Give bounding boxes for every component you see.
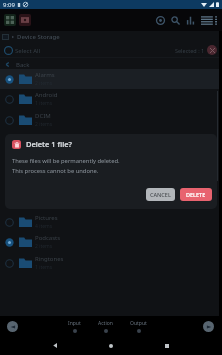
- staticText: Movies: [35, 153, 55, 161]
- staticText: CANCEL: [150, 191, 171, 198]
- button[interactable]: Next: [203, 321, 214, 332]
- staticText: 1 items: [35, 264, 53, 271]
- button[interactable]: Clear selection: [207, 45, 217, 55]
- staticText: 1 items: [35, 100, 53, 107]
- button[interactable]: Download: [0, 130, 219, 150]
- staticText: Pictures: [35, 214, 58, 222]
- button[interactable]: Device Storage: [0, 31, 222, 43]
- button[interactable]: Podcasts: [0, 232, 219, 252]
- staticText: Select All: [15, 47, 41, 55]
- staticText: Android: [35, 91, 58, 99]
- staticText: This process cannot be undone.: [12, 167, 99, 175]
- staticText: Ringtones: [35, 255, 64, 263]
- button[interactable]: Back: [27, 336, 83, 355]
- button[interactable]: CANCEL: [146, 188, 175, 201]
- staticText: DELETE: [186, 191, 206, 198]
- button[interactable]: Output: [128, 319, 149, 334]
- staticText: Back: [16, 61, 30, 69]
- button[interactable]: Search: [168, 11, 183, 29]
- staticText: DCIM: [35, 112, 51, 120]
- button[interactable]: Android: [0, 89, 219, 109]
- button[interactable]: Notifications: [0, 191, 219, 211]
- staticText: 9:09: [3, 1, 15, 9]
- staticText: Output: [130, 320, 147, 327]
- button[interactable]: Apps: [4, 14, 16, 26]
- button[interactable]: Music: [0, 171, 219, 191]
- button[interactable]: Ringtones: [0, 253, 219, 273]
- staticText: 2 items: [35, 243, 53, 250]
- button[interactable]: Back: [0, 58, 222, 71]
- staticText: Alarms: [35, 71, 55, 79]
- button[interactable]: Recents: [139, 336, 195, 355]
- button[interactable]: DCIM: [0, 110, 219, 130]
- button[interactable]: Home: [83, 336, 139, 355]
- staticText: 4 items: [35, 223, 53, 230]
- button[interactable]: DELETE: [180, 188, 212, 201]
- button[interactable]: Select All: [0, 43, 222, 57]
- button[interactable]: Action: [96, 319, 115, 334]
- staticText: Download: [35, 132, 64, 140]
- staticText: 3 items: [35, 141, 53, 148]
- staticText: 2 items: [35, 121, 53, 128]
- button[interactable]: Storage: [19, 14, 31, 26]
- button[interactable]: Movies: [0, 151, 219, 171]
- button[interactable]: List view: [198, 11, 220, 29]
- button[interactable]: Input: [66, 319, 83, 334]
- button[interactable]: Alarms: [0, 69, 219, 89]
- staticText: Input: [68, 320, 81, 327]
- staticText: 1 items: [35, 162, 53, 169]
- staticText: Device Storage: [17, 33, 60, 41]
- staticText: Action: [98, 320, 113, 327]
- staticText: Podcasts: [35, 234, 61, 242]
- staticText: These files will be permanently deleted.: [12, 157, 120, 165]
- staticText: Selected : 1: [175, 47, 205, 54]
- staticText: Delete 1 file?: [26, 139, 72, 149]
- button[interactable]: Sort: [183, 11, 198, 29]
- button[interactable]: Previous: [7, 321, 18, 332]
- button[interactable]: Pictures: [0, 212, 219, 232]
- button[interactable]: Settings: [153, 11, 168, 29]
